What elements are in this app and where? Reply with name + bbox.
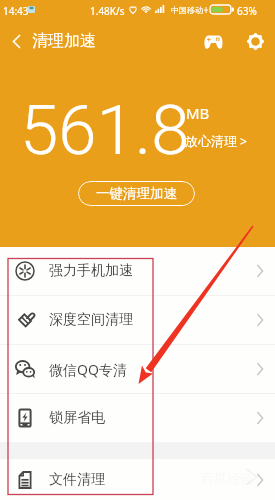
button[interactable]: 放心清理	[185, 133, 247, 149]
staticText: MB	[186, 103, 210, 123]
staticText: 561.8	[20, 90, 190, 171]
button[interactable]: 一键清理加速	[78, 181, 195, 206]
button[interactable]: 文件清理	[0, 459, 275, 500]
staticText: 清理加速	[32, 31, 96, 51]
button[interactable]: Back	[0, 25, 32, 57]
staticText: 63%	[237, 4, 257, 18]
button[interactable]: Settings	[237, 23, 273, 59]
staticText: 微信QQ专清	[49, 360, 127, 379]
staticText: 14:43	[3, 4, 29, 18]
staticText: 文件清理	[49, 471, 105, 489]
staticText: 放心清理	[185, 133, 237, 149]
staticText: 锁屏省电	[49, 409, 105, 427]
button[interactable]: 锁屏省电	[0, 394, 275, 442]
staticText: 深度空间清理	[49, 311, 133, 329]
staticText: 强力手机加速	[49, 262, 133, 280]
staticText: 1.48K/s	[90, 4, 125, 18]
button[interactable]: Games	[195, 23, 231, 59]
staticText: 一键清理加速	[96, 185, 177, 202]
button[interactable]: 微信QQ专清	[0, 345, 275, 393]
button[interactable]: 深度空间清理	[0, 296, 275, 344]
staticText: >	[240, 133, 247, 149]
staticText: 中国移动	[171, 5, 203, 15]
button[interactable]: 强力手机加速	[0, 247, 275, 295]
